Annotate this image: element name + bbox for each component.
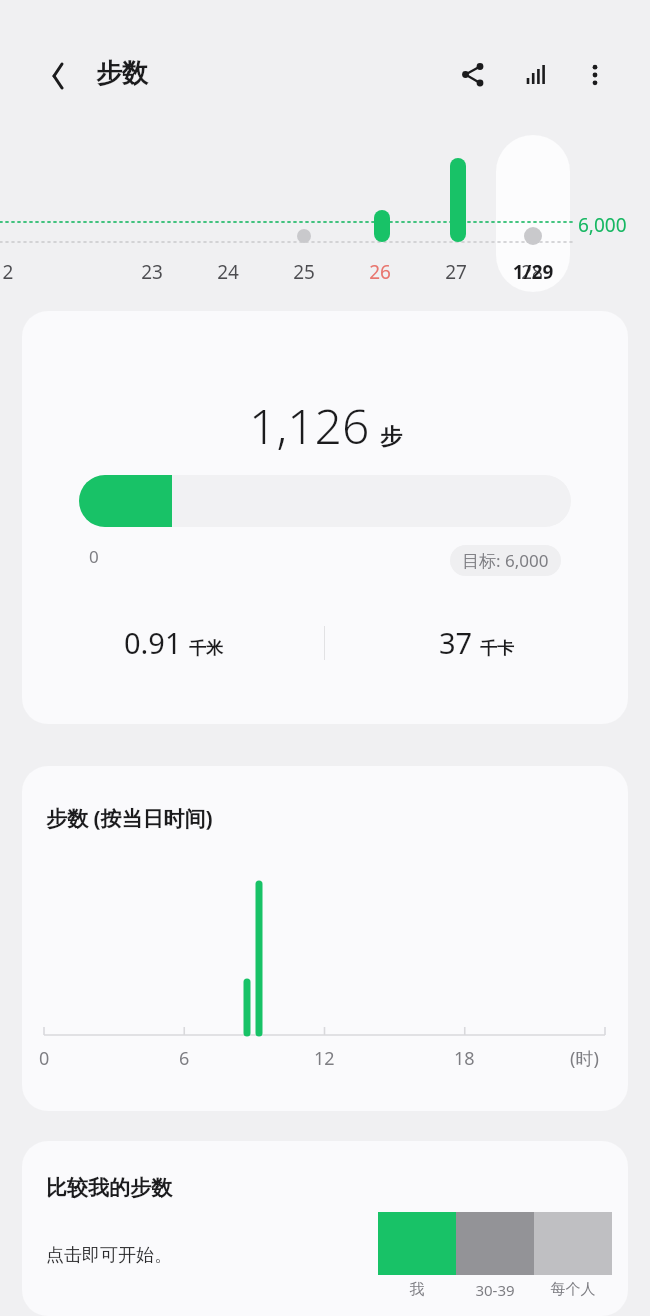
staticText: 步数 (按当日时间) (46, 804, 213, 833)
staticText: 6,000 (578, 212, 627, 238)
staticText: 2 (0, 259, 24, 285)
staticText: 6 (179, 1046, 190, 1071)
button[interactable]: Share (450, 52, 496, 98)
staticText: 每个人 (534, 1280, 612, 1299)
staticText: 0.91 (124, 623, 182, 662)
button[interactable]: 比较我的步数 (22, 1141, 628, 1316)
staticText: 12 (314, 1046, 335, 1071)
staticText: 25 (288, 259, 320, 285)
staticText: 27 (440, 259, 472, 285)
staticText: 千卡 (480, 638, 514, 659)
staticText: 0 (89, 545, 99, 568)
button[interactable]: Chart (514, 52, 560, 98)
staticText: 我 (378, 1280, 456, 1299)
button[interactable]: Back (36, 54, 80, 98)
staticText: 24 (212, 259, 244, 285)
staticText: 目标: 6,000 (462, 549, 549, 572)
staticText: 30-39 (456, 1280, 534, 1300)
staticText: 步 (380, 423, 402, 451)
staticText: 比较我的步数 (46, 1175, 172, 1201)
button[interactable] (496, 135, 570, 292)
staticText: 37 (439, 623, 473, 662)
staticText: 1,126 (249, 393, 370, 458)
staticText: 26 (364, 259, 396, 285)
button[interactable]: 1,126 (22, 311, 628, 724)
button[interactable]: More options (572, 52, 618, 98)
button[interactable]: 步数 (按当日时间) (22, 766, 628, 1111)
staticText: 步数 (96, 57, 148, 90)
staticText: (时) (570, 1046, 599, 1071)
staticText: 千米 (189, 638, 223, 659)
staticText: 23 (136, 259, 168, 285)
staticText: 28 (516, 259, 548, 285)
staticText: 18 (454, 1046, 475, 1071)
staticText: 点击即可开始。 (46, 1244, 172, 1267)
staticText: 1/29 (496, 259, 570, 285)
staticText: 0 (39, 1046, 50, 1071)
